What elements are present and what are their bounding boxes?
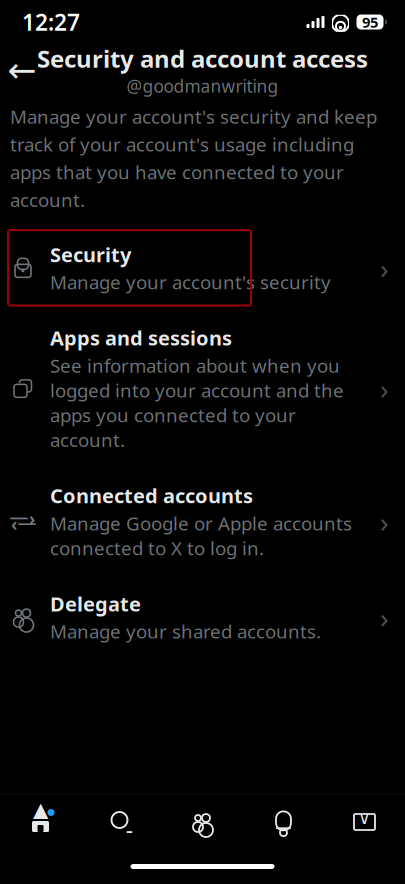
staticText: Apps and sessions (50, 324, 232, 351)
staticText: Manage your account's security (50, 270, 331, 294)
staticText: Manage your shared accounts. (50, 619, 321, 644)
staticText: ∨ (358, 808, 371, 828)
button[interactable]: Back (0, 48, 44, 92)
button[interactable]: Communities (162, 797, 243, 847)
button[interactable]: Messages (324, 797, 405, 847)
staticText: ‹ (11, 513, 17, 536)
button[interactable]: › (0, 471, 405, 571)
staticText: › (380, 249, 389, 286)
staticText: See information about when you logged in… (50, 353, 344, 452)
staticText: Delegate (50, 590, 141, 617)
button[interactable]: Delegate (0, 579, 405, 655)
staticText: Manage your account's security and keep … (10, 104, 377, 212)
button[interactable]: Search (81, 797, 162, 847)
staticText: 12:27 (22, 7, 80, 37)
staticText: 95 (362, 12, 378, 32)
button[interactable]: Home (0, 797, 81, 847)
staticText: › (29, 507, 35, 530)
staticText: Security and account access (37, 43, 368, 74)
button[interactable]: Security (0, 230, 405, 305)
staticText: › (380, 598, 389, 636)
staticText: › (380, 370, 389, 407)
staticText: › (380, 503, 389, 540)
staticText: ▲ (33, 798, 48, 821)
staticText: @goodmanwriting (126, 74, 278, 97)
staticText: Connected accounts (50, 482, 253, 509)
staticText: ← (7, 50, 36, 90)
staticText: Manage Google or Apple accounts connecte… (50, 511, 352, 560)
staticText: Security (50, 241, 131, 268)
button[interactable]: Notifications (243, 797, 324, 847)
button[interactable]: Apps and sessions (0, 313, 405, 463)
